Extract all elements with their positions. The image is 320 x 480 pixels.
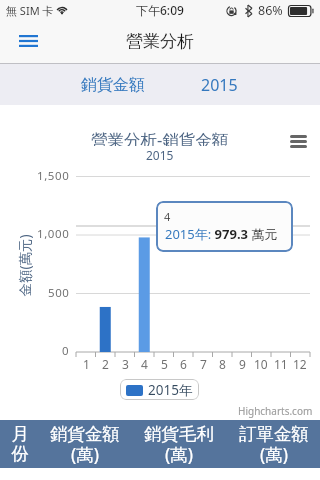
staticText: 11 xyxy=(274,356,288,370)
staticText: 1,500 xyxy=(37,168,70,184)
staticText: 12 xyxy=(293,356,307,370)
staticText: 銷貨毛利 (萬) xyxy=(144,423,214,466)
staticText: 1,000 xyxy=(37,226,70,242)
staticText: 下午6:09 xyxy=(136,2,184,18)
staticText: 86% xyxy=(258,2,283,19)
staticText: 2015年: 979.3 萬元 xyxy=(165,225,278,243)
button[interactable]: 2015 xyxy=(193,67,246,103)
staticText: 2015年 xyxy=(148,381,193,399)
staticText: 銷貨金額 xyxy=(81,75,145,95)
staticText: 2015 xyxy=(201,74,238,96)
staticText: 2015 xyxy=(146,147,174,161)
button[interactable]: 月 份 xyxy=(0,420,40,468)
staticText: 營業分析 xyxy=(126,31,194,52)
staticText: 3 xyxy=(122,356,129,370)
staticText: 8 xyxy=(219,356,226,370)
staticText: 1 xyxy=(83,356,90,370)
staticText: 月 份 xyxy=(11,423,29,466)
staticText: 9 xyxy=(239,356,246,370)
staticText: 金額(萬元) xyxy=(15,233,33,296)
staticText: 無 SIM 卡 xyxy=(6,3,54,18)
staticText: 營業分析-銷貨金額 xyxy=(91,128,229,146)
button[interactable]: 2015年 xyxy=(120,379,199,400)
staticText: 0 xyxy=(62,343,70,359)
staticText: 4 xyxy=(141,356,148,370)
button[interactable]: 銷貨毛利 (萬) xyxy=(130,420,228,468)
staticText: 500 xyxy=(48,285,70,301)
button[interactable]: Menu xyxy=(12,25,44,57)
staticText: 5 xyxy=(161,356,168,370)
staticText: Highcharts.com xyxy=(238,404,313,418)
button[interactable]: Chart menu xyxy=(287,131,310,151)
button[interactable]: 訂單金額 (萬) xyxy=(228,420,320,468)
staticText: 銷貨金額 (萬) xyxy=(50,423,120,466)
staticText: 7 xyxy=(200,356,207,370)
staticText: 6 xyxy=(180,356,187,370)
button[interactable]: 銷貨金額 (萬) xyxy=(40,420,130,468)
staticText: 訂單金額 (萬) xyxy=(239,423,309,466)
staticText: 10 xyxy=(254,356,268,370)
staticText: 2 xyxy=(102,356,109,370)
button[interactable]: 銷貨金額 xyxy=(73,68,153,102)
staticText: 4 xyxy=(164,209,171,224)
